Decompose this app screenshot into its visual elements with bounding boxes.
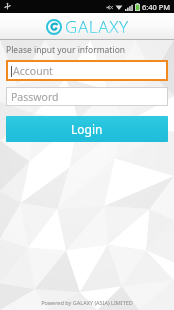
staticText: 6:40 PM bbox=[142, 2, 171, 12]
staticText: GALAXY bbox=[65, 15, 129, 38]
button[interactable]: Password bbox=[6, 87, 168, 106]
staticText: Password bbox=[11, 90, 59, 104]
button[interactable]: Login bbox=[6, 116, 168, 142]
button[interactable]: Account bbox=[6, 60, 168, 81]
staticText: Account bbox=[13, 64, 53, 78]
staticText: Login bbox=[71, 121, 103, 137]
staticText: Please input your information bbox=[6, 44, 126, 56]
staticText: Powered by GALAXY (ASIA) LIMITED bbox=[0, 299, 174, 306]
